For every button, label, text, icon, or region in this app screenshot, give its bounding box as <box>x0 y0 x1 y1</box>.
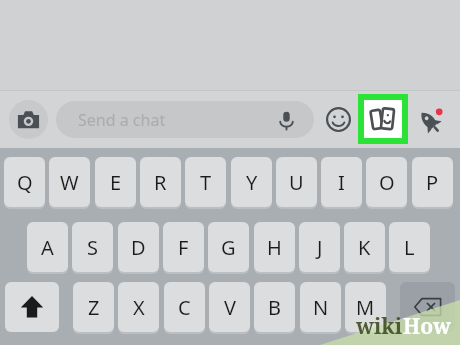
button[interactable]: Emoji <box>324 105 353 134</box>
button[interactable]: O <box>366 157 407 207</box>
staticText: Z <box>88 294 100 321</box>
button[interactable]: N <box>300 282 341 332</box>
staticText: H <box>267 234 282 261</box>
button[interactable]: Shift <box>5 282 59 332</box>
button[interactable]: Voice note <box>274 108 298 132</box>
staticText: F <box>178 234 189 261</box>
staticText: S <box>87 234 98 261</box>
staticText: B <box>268 294 281 321</box>
staticText: I <box>338 169 345 196</box>
button[interactable]: Camera <box>9 100 48 139</box>
button[interactable]: V <box>209 282 250 332</box>
staticText: Q <box>17 169 33 196</box>
button[interactable]: R <box>140 157 181 207</box>
button[interactable]: Z <box>73 282 114 332</box>
button[interactable]: Send a chat <box>56 101 314 138</box>
staticText: P <box>426 169 439 196</box>
staticText: R <box>154 169 167 196</box>
button[interactable]: U <box>276 157 317 207</box>
button[interactable]: K <box>344 222 385 272</box>
button[interactable]: E <box>95 157 136 207</box>
staticText: V <box>224 294 236 321</box>
button[interactable]: T <box>185 157 226 207</box>
staticText: K <box>358 234 371 261</box>
button[interactable]: M <box>345 282 386 332</box>
button[interactable]: Rockets <box>414 104 446 136</box>
staticText: G <box>221 234 236 261</box>
staticText: T <box>200 169 212 196</box>
button[interactable]: F <box>163 222 204 272</box>
button[interactable]: B <box>254 282 295 332</box>
staticText: J <box>317 234 323 261</box>
staticText: How <box>403 312 452 341</box>
button[interactable]: L <box>389 222 430 272</box>
button[interactable]: A <box>27 222 68 272</box>
staticText: L <box>404 234 415 261</box>
button[interactable]: W <box>49 157 90 207</box>
staticText: X <box>133 294 145 321</box>
staticText: U <box>289 169 304 196</box>
button[interactable]: Q <box>4 157 45 207</box>
button[interactable]: Stickers <box>364 100 402 138</box>
staticText: E <box>110 169 122 196</box>
button[interactable]: Backspace <box>400 282 455 332</box>
staticText: D <box>131 234 146 261</box>
button[interactable]: C <box>164 282 205 332</box>
button[interactable]: P <box>412 157 453 207</box>
button[interactable]: S <box>72 222 113 272</box>
button[interactable]: X <box>118 282 159 332</box>
staticText: W <box>60 169 79 196</box>
button[interactable]: G <box>208 222 249 272</box>
button[interactable]: H <box>254 222 295 272</box>
staticText: N <box>313 294 329 321</box>
staticText: M <box>356 294 375 321</box>
staticText: Send a chat <box>78 109 166 131</box>
staticText: Y <box>246 169 258 196</box>
button[interactable]: I <box>321 157 362 207</box>
staticText: C <box>178 294 191 321</box>
staticText: O <box>379 169 395 196</box>
button[interactable]: J <box>299 222 340 272</box>
staticText: A <box>41 234 54 261</box>
button[interactable]: D <box>118 222 159 272</box>
staticText: wiki <box>356 312 403 341</box>
button[interactable]: Y <box>231 157 272 207</box>
